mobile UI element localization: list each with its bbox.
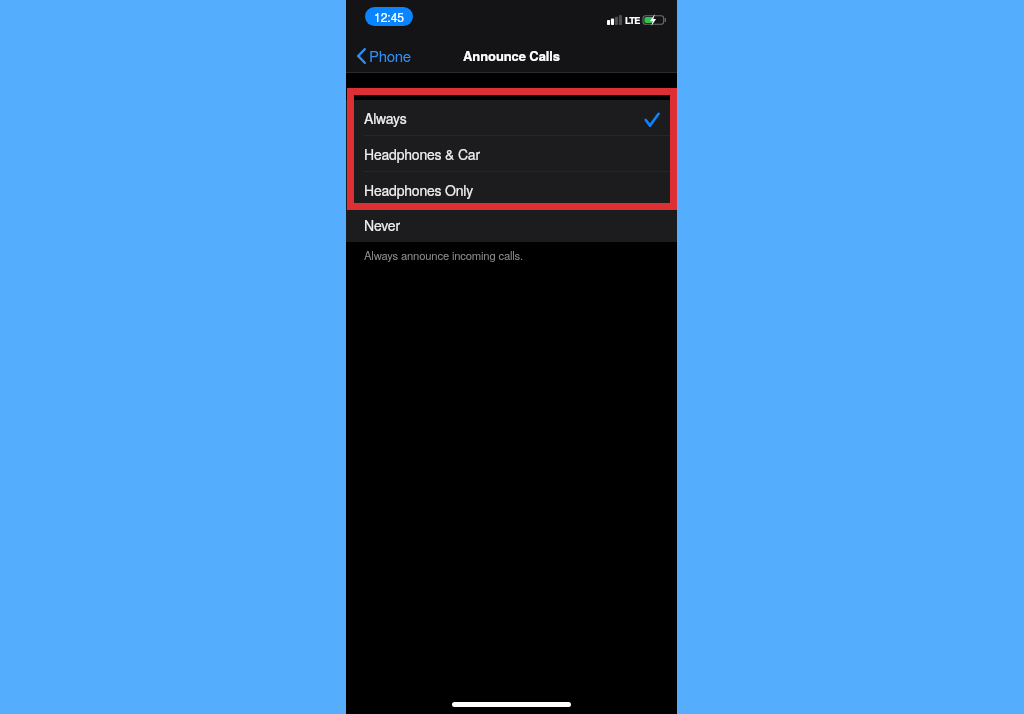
staticText: Announce Calls	[463, 46, 560, 65]
button[interactable]: Never	[346, 207, 677, 242]
button[interactable]: Return to call	[365, 7, 413, 26]
staticText: LTE	[625, 14, 640, 27]
staticText: Headphones & Car	[364, 144, 480, 164]
staticText: Always	[364, 108, 407, 128]
button[interactable]: Headphones Only	[346, 172, 677, 207]
staticText: Headphones Only	[364, 180, 473, 200]
staticText: Always announce incoming calls.	[364, 247, 523, 263]
button[interactable]: Back to Phone	[346, 40, 419, 71]
staticText: Phone	[369, 45, 411, 66]
button[interactable]: Always	[346, 100, 677, 135]
button[interactable]: Headphones & Car	[346, 136, 677, 171]
staticText: 12:45	[374, 8, 405, 25]
staticText: Never	[364, 215, 400, 235]
